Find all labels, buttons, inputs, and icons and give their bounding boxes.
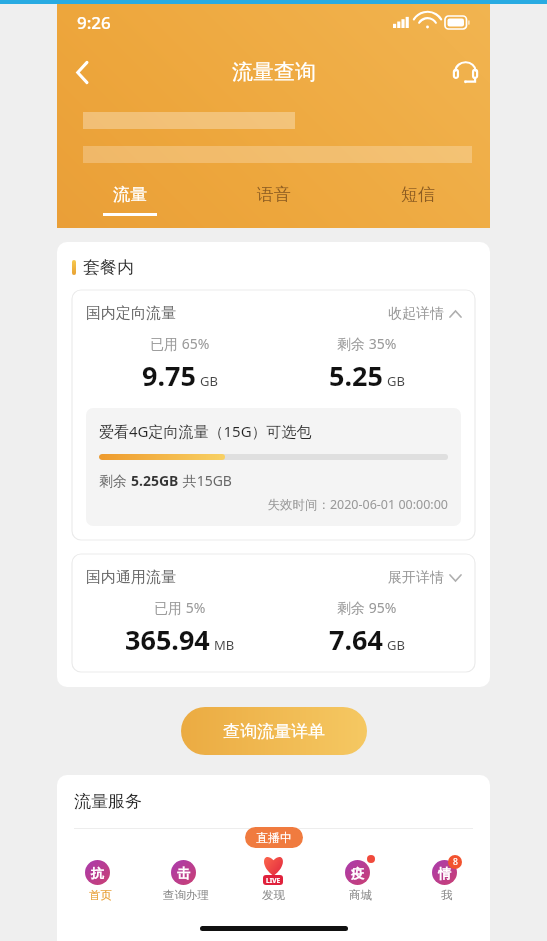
- button[interactable]: 情: [403, 850, 490, 906]
- staticText: 5.25: [329, 357, 383, 394]
- staticText: 流量: [113, 184, 147, 205]
- staticText: 直播中: [256, 830, 292, 845]
- staticText: 国内通用流量: [86, 568, 176, 587]
- staticText: 疫: [351, 865, 364, 881]
- button[interactable]: 查询流量详单: [181, 707, 367, 755]
- staticText: 9:26: [77, 11, 111, 34]
- staticText: 查询办理: [163, 888, 209, 902]
- staticText: GB: [200, 372, 218, 390]
- staticText: 7.64: [329, 621, 383, 658]
- staticText: 剩余: [99, 471, 131, 490]
- staticText: 我: [441, 888, 453, 902]
- staticText: 已用 5%: [154, 598, 206, 617]
- staticText: 首页: [89, 888, 112, 902]
- button[interactable]: 流量: [57, 172, 202, 228]
- button[interactable]: 语音: [202, 172, 346, 228]
- staticText: MB: [214, 636, 235, 654]
- staticText: 剩余 95%: [337, 598, 397, 617]
- staticText: 发现: [262, 888, 285, 902]
- staticText: 5.25GB: [131, 471, 179, 490]
- staticText: 已用 65%: [150, 334, 210, 353]
- button[interactable]: 击: [143, 850, 229, 906]
- staticText: GB: [387, 636, 405, 654]
- staticText: 击: [177, 865, 190, 881]
- staticText: 短信: [401, 184, 435, 205]
- staticText: 失效时间：2020-06-01 00:00:00: [99, 496, 448, 513]
- button[interactable]: 疫: [316, 850, 403, 906]
- button[interactable]: Back: [57, 47, 107, 97]
- staticText: 抗: [91, 865, 104, 881]
- staticText: LIVE: [266, 876, 281, 885]
- button[interactable]: 展开详情: [388, 569, 461, 587]
- staticText: 流量查询: [232, 59, 316, 85]
- staticText: 语音: [257, 184, 291, 205]
- button[interactable]: 短信: [346, 172, 490, 228]
- staticText: 8: [453, 856, 458, 868]
- staticText: 共15GB: [179, 471, 232, 490]
- staticText: 套餐内: [83, 257, 134, 278]
- button[interactable]: 抗: [57, 850, 143, 906]
- staticText: GB: [387, 372, 405, 390]
- staticText: 国内定向流量: [86, 304, 176, 323]
- staticText: 商城: [349, 888, 372, 902]
- staticText: 9.75: [142, 357, 196, 394]
- staticText: 查询流量详单: [223, 721, 325, 742]
- staticText: 情: [438, 865, 451, 881]
- button[interactable]: Customer service: [440, 47, 490, 97]
- staticText: 展开详情: [388, 569, 444, 587]
- staticText: 剩余 35%: [337, 334, 397, 353]
- staticText: 收起详情: [388, 305, 444, 323]
- staticText: 365.94: [125, 621, 210, 658]
- staticText: 流量服务: [74, 791, 142, 812]
- button[interactable]: 收起详情: [388, 305, 461, 323]
- staticText: 爱看4G定向流量（15G）可选包: [99, 421, 312, 441]
- button[interactable]: LIVE: [229, 850, 316, 906]
